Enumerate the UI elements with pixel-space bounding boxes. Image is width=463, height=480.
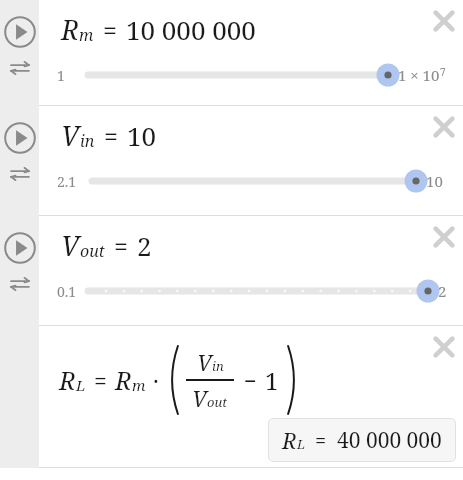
staticText: = [114,229,128,263]
staticText: 0.1 [57,282,77,301]
staticText: 10 [426,171,443,191]
staticText: 1 [265,364,279,397]
button[interactable]: 1 [39,58,463,92]
staticText: = [104,119,118,153]
button[interactable]: 0.1 [39,274,463,308]
staticText: R [59,363,76,397]
staticText: 40 000 000 [337,426,442,455]
button[interactable]: Play animation [3,15,37,49]
button[interactable]: Toggle [6,54,34,82]
staticText: = [315,427,327,454]
staticText: 2 [438,281,447,301]
button[interactable]: V [61,216,463,274]
staticText: L [76,375,86,395]
staticText: R [282,425,297,455]
staticText: out [207,393,228,411]
button[interactable]: 2.1 [39,164,463,198]
button[interactable]: R [61,0,463,58]
staticText: V [192,383,207,413]
staticText: 2.1 [57,172,77,191]
staticText: 2 [137,228,152,263]
staticText: · [153,365,159,396]
staticText: 7 [440,65,446,79]
staticText: in [80,130,95,152]
button[interactable]: Toggle [6,270,34,298]
staticText: in [212,357,224,375]
button[interactable]: Delete row [429,6,459,36]
button[interactable]: V [61,106,463,164]
button[interactable]: Toggle [6,160,34,188]
staticText: R [61,11,79,48]
button[interactable]: Delete row [429,332,459,362]
staticText: V [61,117,80,154]
staticText: 10 [127,118,157,153]
button[interactable]: Play animation [3,231,37,265]
staticText: V [61,227,80,264]
staticText: − [244,365,257,395]
staticText: V [197,347,212,377]
staticText: R [115,363,132,397]
staticText: 1 × 10 [398,65,440,85]
staticText: = [94,365,107,396]
staticText: out [80,240,105,262]
staticText: = [103,13,117,47]
button[interactable]: Delete row [429,112,459,142]
staticText: L [297,435,306,453]
button[interactable]: R [282,425,442,455]
staticText: 10 000 000 [126,12,256,47]
staticText: m [79,24,94,46]
button[interactable]: Play animation [3,121,37,155]
staticText: m [132,375,146,395]
staticText: 1 [57,66,65,85]
button[interactable]: Delete row [429,222,459,252]
button[interactable]: R [59,344,300,416]
